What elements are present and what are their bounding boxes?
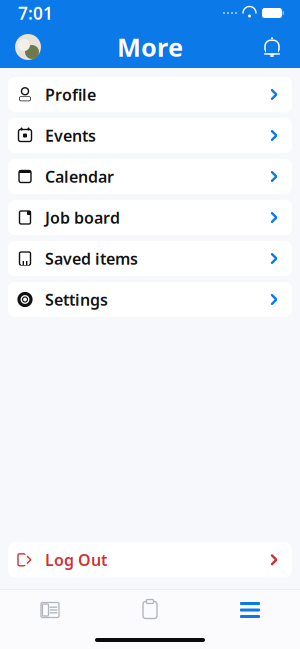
- button[interactable]: Profile: [8, 77, 292, 112]
- button[interactable]: Profile photo: [14, 33, 42, 61]
- staticText: Calendar: [45, 166, 114, 187]
- button[interactable]: Settings: [8, 282, 292, 317]
- button[interactable]: Calendar: [8, 159, 292, 194]
- button[interactable]: News: [0, 593, 100, 627]
- staticText: More: [117, 30, 183, 64]
- button[interactable]: Log Out: [8, 542, 292, 577]
- button[interactable]: Job board: [8, 200, 292, 235]
- button[interactable]: Saved items: [8, 241, 292, 276]
- staticText: Events: [45, 125, 96, 146]
- staticText: Settings: [45, 289, 108, 310]
- staticText: Profile: [45, 84, 96, 105]
- button[interactable]: Events: [8, 118, 292, 153]
- staticText: Log Out: [45, 549, 107, 570]
- button[interactable]: Tasks: [100, 593, 200, 627]
- button[interactable]: Notifications: [258, 33, 286, 61]
- button[interactable]: More: [200, 593, 300, 627]
- staticText: Job board: [45, 207, 120, 228]
- staticText: Saved items: [45, 248, 138, 269]
- staticText: 7:01: [18, 1, 53, 24]
